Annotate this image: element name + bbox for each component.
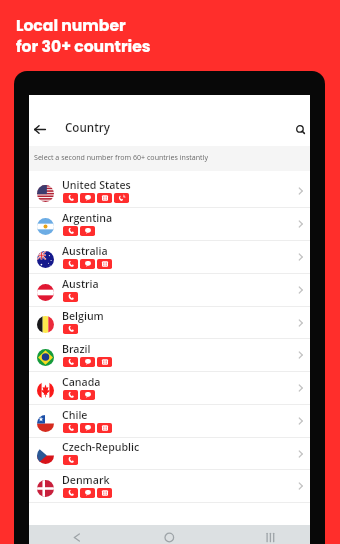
button[interactable]: Chat <box>80 193 95 203</box>
button[interactable]: Austria <box>29 274 310 307</box>
button[interactable]: Search <box>289 118 311 140</box>
staticText: Australia <box>62 244 108 258</box>
button[interactable]: Voice call <box>63 193 78 203</box>
staticText: Country <box>65 120 110 136</box>
staticText: Select a second number from 60+ countrie… <box>34 152 208 162</box>
button[interactable]: SMS <box>97 357 112 367</box>
staticText: Denmark <box>62 473 110 487</box>
button[interactable]: Voice call <box>63 390 78 400</box>
button[interactable]: Chat <box>80 390 95 400</box>
button[interactable]: Voice call <box>63 259 78 269</box>
button[interactable]: Call forwarding <box>114 193 129 203</box>
button[interactable]: Chat <box>80 226 95 236</box>
staticText: Austria <box>62 277 99 291</box>
button[interactable]: Voice call <box>63 357 78 367</box>
button[interactable]: SMS <box>97 193 112 203</box>
button[interactable]: SMS <box>97 423 112 433</box>
staticText: Brazil <box>62 342 91 356</box>
button[interactable]: Belgium <box>29 307 310 339</box>
staticText: Chile <box>62 408 88 422</box>
button[interactable]: Denmark <box>29 470 310 503</box>
button[interactable]: Chat <box>80 488 95 498</box>
button[interactable]: Australia <box>29 241 310 274</box>
button[interactable]: Voice call <box>63 455 78 465</box>
button[interactable]: Voice call <box>63 488 78 498</box>
button[interactable]: Chat <box>80 259 95 269</box>
button[interactable]: Voice call <box>63 324 78 334</box>
staticText: Local number for 30+ countries <box>16 15 151 57</box>
button[interactable]: Voice call <box>63 423 78 433</box>
button[interactable]: SMS <box>97 488 112 498</box>
staticText: Czech-Republic <box>62 440 140 454</box>
button[interactable]: Voice call <box>63 292 78 302</box>
button[interactable]: Chat <box>80 357 95 367</box>
button[interactable]: Back <box>29 118 51 140</box>
button[interactable]: Voice call <box>63 226 78 236</box>
button[interactable]: Canada <box>29 372 310 405</box>
button[interactable]: Czech-Republic <box>29 438 310 470</box>
button[interactable]: Brazil <box>29 339 310 372</box>
staticText: United States <box>62 178 131 192</box>
button[interactable]: United States <box>29 175 310 208</box>
button[interactable]: SMS <box>97 259 112 269</box>
button[interactable]: Chile <box>29 405 310 438</box>
button[interactable]: Argentina <box>29 208 310 241</box>
staticText: Argentina <box>62 211 113 225</box>
staticText: Canada <box>62 375 101 389</box>
staticText: Belgium <box>62 309 104 323</box>
button[interactable]: Chat <box>80 423 95 433</box>
